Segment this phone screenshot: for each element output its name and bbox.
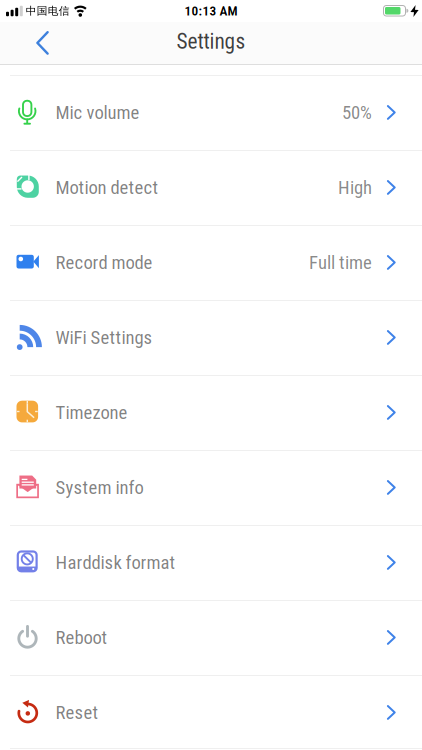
- staticText: WiFi Settings: [55, 327, 152, 348]
- staticText: Timezone: [55, 402, 127, 423]
- staticText: Harddisk format: [55, 552, 175, 573]
- button[interactable]: Back: [0, 23, 49, 63]
- button[interactable]: System info: [0, 450, 422, 525]
- button[interactable]: Reset: [0, 675, 422, 750]
- staticText: Record mode: [55, 252, 152, 273]
- button[interactable]: Reboot: [0, 600, 422, 675]
- button[interactable]: Record mode: [0, 225, 422, 300]
- button[interactable]: Motion detect: [0, 150, 422, 225]
- staticText: Motion detect: [55, 177, 158, 198]
- staticText: 10:13 AM: [184, 3, 237, 19]
- staticText: 中国电信: [26, 4, 70, 18]
- button[interactable]: Mic volume: [0, 75, 422, 150]
- staticText: Mic volume: [55, 102, 139, 123]
- button[interactable]: Timezone: [0, 375, 422, 450]
- button[interactable]: WiFi Settings: [0, 300, 422, 375]
- staticText: System info: [55, 477, 143, 498]
- staticText: Reset: [55, 702, 98, 723]
- staticText: Reboot: [55, 627, 107, 648]
- staticText: 50%: [342, 102, 372, 123]
- staticText: High: [338, 177, 372, 198]
- staticText: Settings: [176, 29, 245, 54]
- staticText: Full time: [309, 252, 372, 273]
- button[interactable]: Harddisk format: [0, 525, 422, 600]
